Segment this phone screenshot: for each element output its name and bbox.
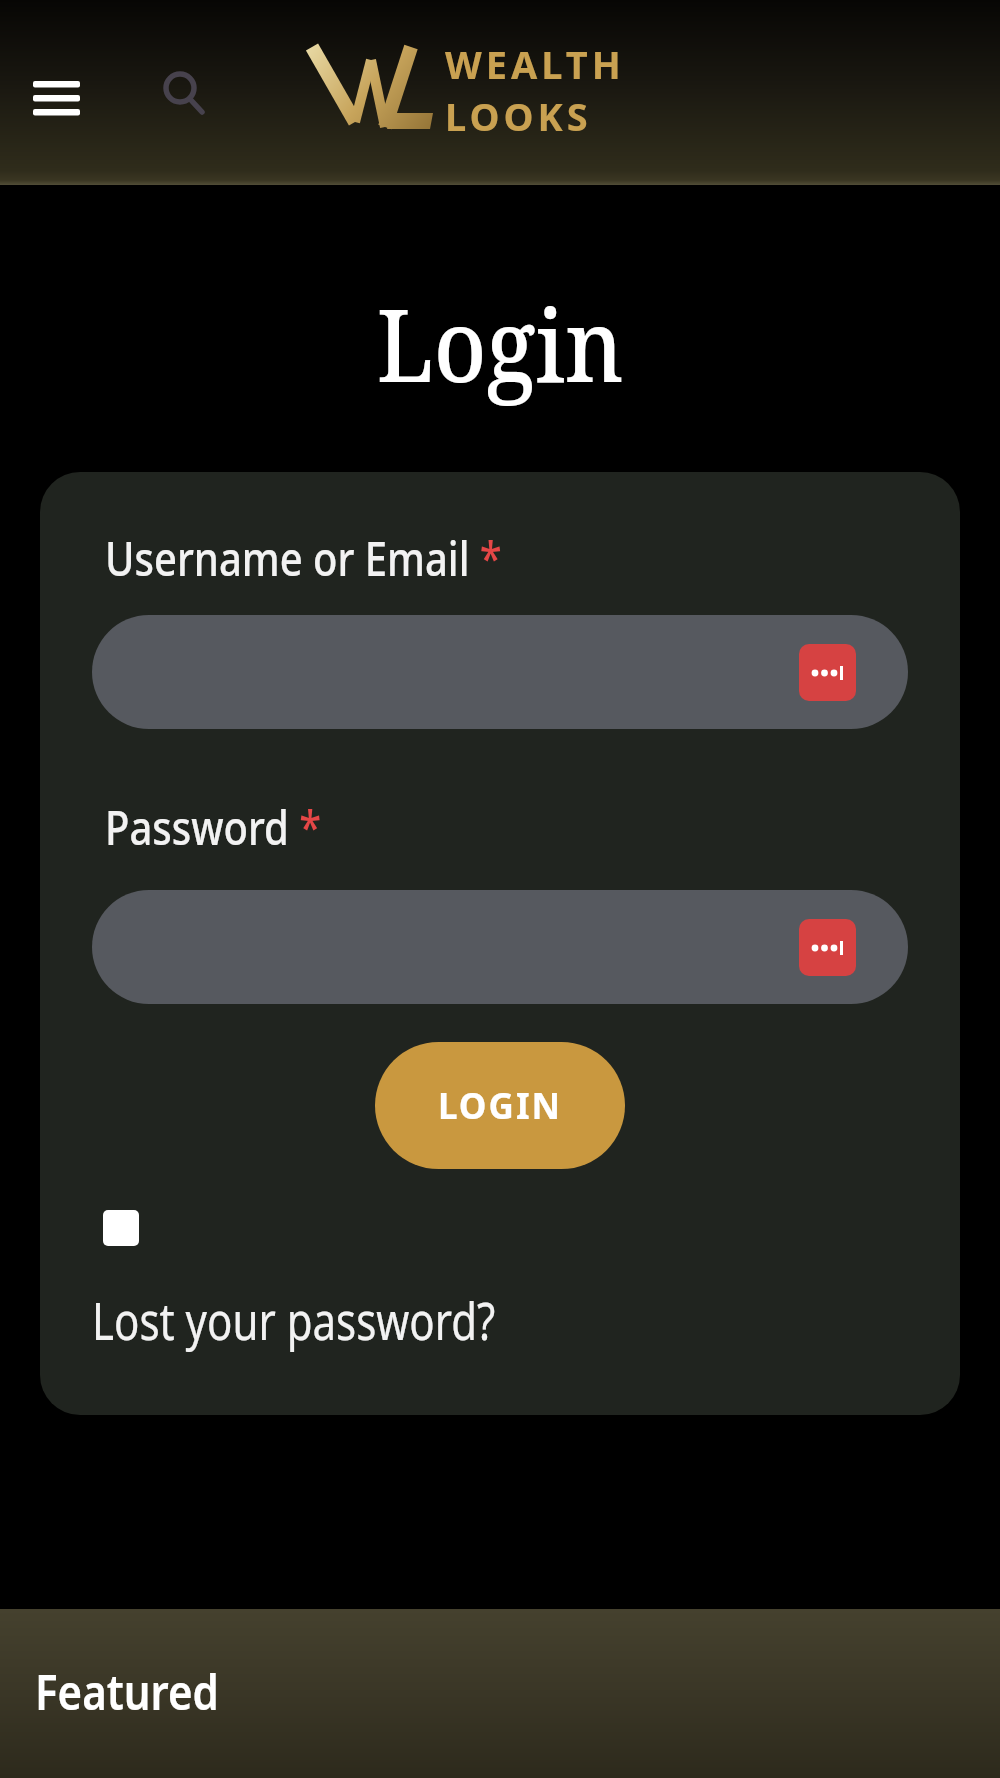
button[interactable] — [103, 1210, 139, 1246]
button[interactable] — [92, 615, 908, 729]
staticText: Login — [377, 275, 624, 411]
button[interactable]: LOGIN — [375, 1042, 625, 1169]
staticText: Password * — [105, 794, 322, 858]
staticText: LOGIN — [438, 1082, 562, 1130]
staticText: Username or Email * — [105, 525, 502, 589]
staticText: LOOKS — [445, 90, 592, 142]
button[interactable] — [92, 890, 908, 1004]
button[interactable]: Lost your password? — [92, 1292, 496, 1349]
staticText: WEALTH — [445, 38, 625, 90]
button[interactable] — [155, 65, 215, 125]
button[interactable] — [20, 68, 92, 128]
button[interactable]: WEALTH — [308, 38, 625, 142]
staticText: Featured — [35, 1657, 219, 1723]
